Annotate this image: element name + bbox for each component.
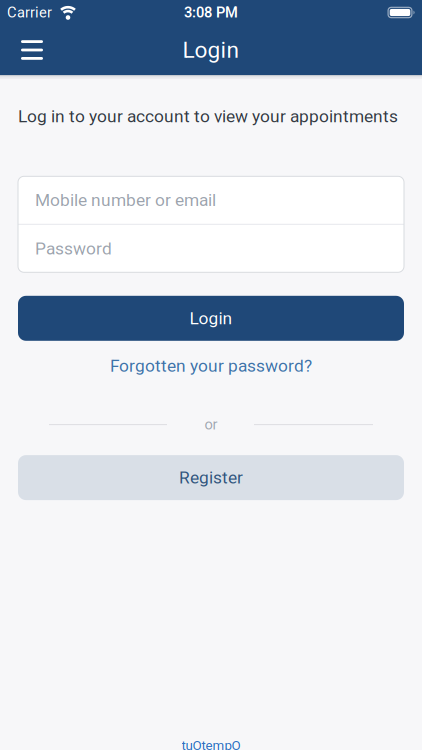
- button[interactable]: Password: [18, 225, 404, 272]
- staticText: Mobile number or email: [35, 190, 216, 210]
- button[interactable]: Mobile number or email: [18, 176, 404, 224]
- staticText: Register: [179, 468, 243, 487]
- staticText: Carrier: [7, 4, 52, 21]
- button[interactable]: tuOtempO: [181, 738, 240, 750]
- staticText: Login: [182, 37, 239, 63]
- staticText: Login: [189, 308, 232, 328]
- staticText: Forgotten your password?: [110, 356, 312, 376]
- staticText: Password: [35, 239, 112, 258]
- button[interactable]: Forgotten your password?: [110, 356, 312, 376]
- button[interactable]: Register: [18, 455, 404, 500]
- button[interactable]: Menu: [11, 30, 53, 70]
- staticText: Log in to your account to view your appo…: [18, 106, 398, 126]
- staticText: 3:08 PM: [184, 4, 238, 21]
- staticText: or: [204, 416, 217, 433]
- staticText: tuOtempO: [181, 738, 240, 750]
- button[interactable]: Login: [18, 296, 404, 341]
